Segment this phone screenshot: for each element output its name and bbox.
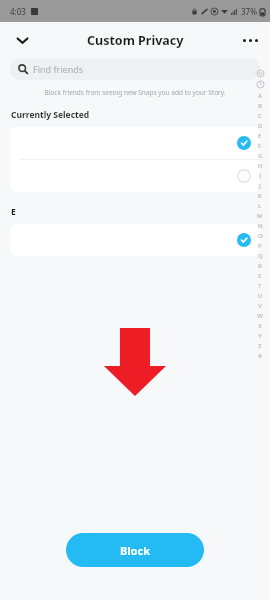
staticText: T	[258, 282, 262, 290]
staticText: Custom Privacy	[87, 32, 184, 49]
staticText: E	[258, 132, 262, 140]
button[interactable]: Block	[66, 533, 204, 567]
staticText: M	[257, 212, 263, 220]
button[interactable]: Find friends	[10, 58, 260, 80]
staticText: O	[258, 232, 263, 240]
staticText: 4:03	[10, 6, 26, 17]
staticText: Z	[258, 342, 262, 350]
staticText: W	[257, 312, 263, 320]
staticText: X	[258, 322, 262, 330]
button[interactable]: Close	[8, 26, 36, 54]
staticText: P	[258, 242, 262, 250]
button[interactable]: Alphabet index	[253, 70, 267, 361]
button[interactable]	[10, 127, 260, 159]
staticText: N	[258, 222, 263, 230]
staticText: B	[258, 102, 262, 110]
staticText: Currently Selected	[11, 109, 90, 121]
staticText: Block	[120, 543, 150, 558]
button[interactable]	[10, 224, 260, 256]
staticText: F	[258, 142, 262, 150]
staticText: L	[258, 202, 262, 210]
staticText: #	[258, 352, 262, 360]
staticText: G	[258, 152, 263, 160]
staticText: I	[259, 172, 262, 180]
staticText: C	[258, 112, 262, 120]
staticText: U	[258, 292, 263, 300]
staticText: H	[258, 162, 263, 170]
staticText: Block friends from seeing new Snaps you …	[0, 88, 270, 97]
staticText: E	[11, 206, 16, 218]
staticText: Q	[258, 252, 263, 260]
staticText: Y	[258, 332, 262, 340]
staticText: K	[258, 192, 262, 200]
staticText: 37%	[241, 6, 257, 17]
staticText: R	[258, 262, 262, 270]
staticText: Find friends	[33, 63, 84, 75]
staticText: J	[259, 182, 261, 190]
staticText: D	[258, 122, 263, 130]
staticText: A	[258, 92, 262, 100]
staticText: V	[258, 302, 262, 310]
button[interactable]: More options	[236, 26, 264, 54]
staticText: S	[258, 272, 262, 280]
